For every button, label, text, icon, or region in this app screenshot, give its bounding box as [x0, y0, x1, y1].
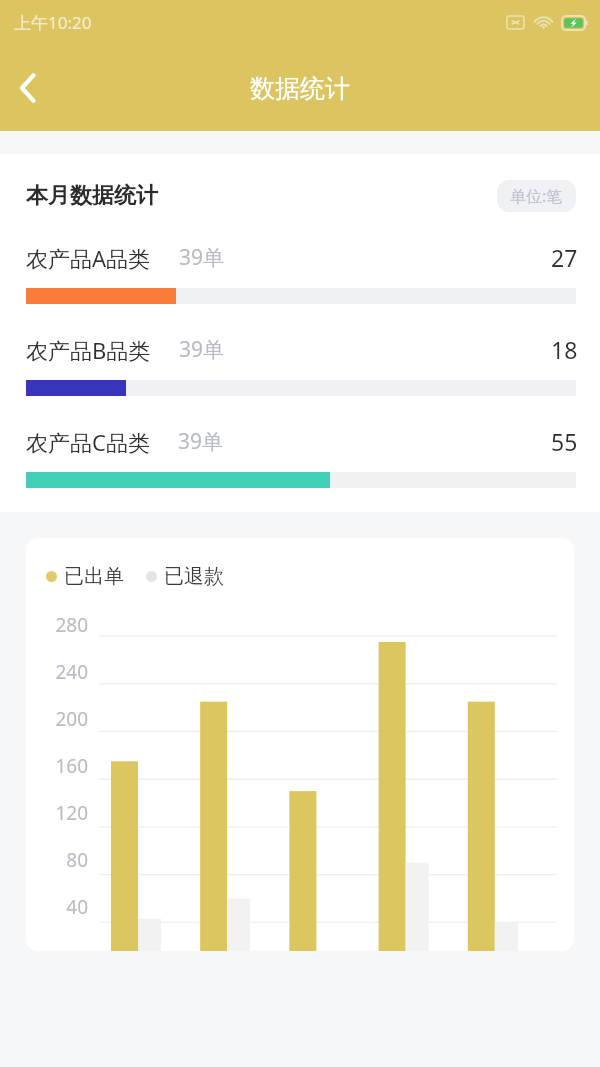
staticText: 18: [551, 334, 578, 365]
staticText: 39单: [179, 335, 225, 364]
staticText: 已退款: [164, 564, 224, 589]
staticText: 农产品B品类: [26, 335, 151, 365]
staticText: 已出单: [64, 564, 124, 589]
button[interactable]: 农产品C品类: [26, 426, 576, 488]
staticText: 40: [26, 894, 88, 920]
staticText: 27: [551, 242, 578, 273]
button[interactable]: 农产品A品类: [26, 242, 576, 304]
staticText: 200: [26, 706, 88, 732]
staticText: 上午10:20: [14, 11, 92, 34]
staticText: 39单: [179, 243, 225, 272]
staticText: 280: [26, 612, 88, 638]
staticText: 160: [26, 753, 88, 779]
staticText: 39单: [178, 427, 224, 456]
staticText: 农产品A品类: [26, 243, 151, 273]
button[interactable]: Back: [0, 60, 56, 116]
staticText: 120: [26, 800, 88, 826]
staticText: 本月数据统计: [26, 182, 158, 210]
button[interactable]: 农产品B品类: [26, 334, 576, 396]
staticText: 单位:笔: [510, 185, 563, 207]
staticText: 数据统计: [250, 73, 350, 104]
staticText: 农产品C品类: [26, 427, 150, 457]
button[interactable]: 单位:笔: [497, 180, 576, 212]
staticText: 240: [26, 659, 88, 685]
staticText: 55: [551, 426, 578, 457]
staticText: 80: [26, 847, 88, 873]
